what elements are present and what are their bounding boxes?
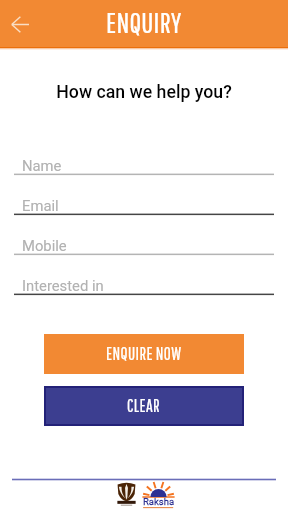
staticText: Mobile [22,237,67,254]
staticText: Interested in [22,277,104,294]
staticText: Email [22,197,59,214]
staticText: ENQUIRE NOW [106,344,182,364]
staticText: Name [22,157,62,174]
staticText: CLEAR [127,396,161,416]
button[interactable]: CLEAR [46,388,242,424]
button[interactable]: Mobile [14,216,274,256]
button[interactable]: Interested in [14,256,274,296]
staticText: How can we help you? [0,82,288,103]
staticText: Raksha [143,496,175,507]
button[interactable]: Name [14,136,274,176]
button[interactable]: Email [14,176,274,216]
staticText: ENQUIRY [106,6,182,39]
button[interactable]: ENQUIRE NOW [44,334,244,374]
button[interactable]: Back [0,4,40,44]
